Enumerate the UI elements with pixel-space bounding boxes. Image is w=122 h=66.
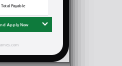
staticText: nd Apply Now	[0, 22, 28, 27]
staticText: Total Payable	[1, 3, 25, 8]
staticText: ames.com	[0, 42, 19, 47]
button[interactable]: nd Apply Now	[0, 17, 52, 32]
